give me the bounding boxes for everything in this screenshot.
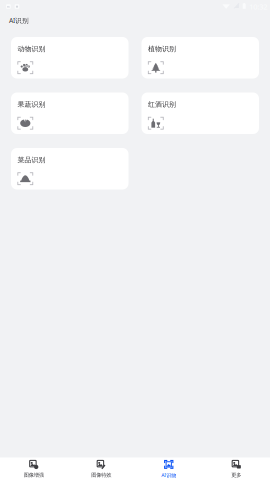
button[interactable]: 红酒识别 <box>141 92 259 134</box>
button[interactable]: AI识物 <box>135 457 202 480</box>
staticText: AI识别 <box>9 16 29 25</box>
staticText: 菜品识别 <box>17 156 45 164</box>
staticText: 图像特效 <box>91 472 111 478</box>
button[interactable]: 动物识别 <box>11 37 128 78</box>
staticText: 红酒识别 <box>148 100 176 109</box>
staticText: 图像增强 <box>24 472 44 478</box>
staticText: 动物识别 <box>17 45 45 53</box>
button[interactable]: 图像增强 <box>0 457 67 480</box>
staticText: 更多 <box>231 472 241 478</box>
button[interactable]: 图像特效 <box>67 457 135 480</box>
button[interactable]: 果蔬识别 <box>11 92 128 134</box>
staticText: 果蔬识别 <box>17 100 45 109</box>
staticText: AI识物 <box>161 472 176 479</box>
staticText: 植物识别 <box>148 45 176 53</box>
button[interactable]: 更多 <box>202 457 270 480</box>
button[interactable]: 菜品识别 <box>11 148 128 189</box>
button[interactable]: 植物识别 <box>141 37 259 78</box>
